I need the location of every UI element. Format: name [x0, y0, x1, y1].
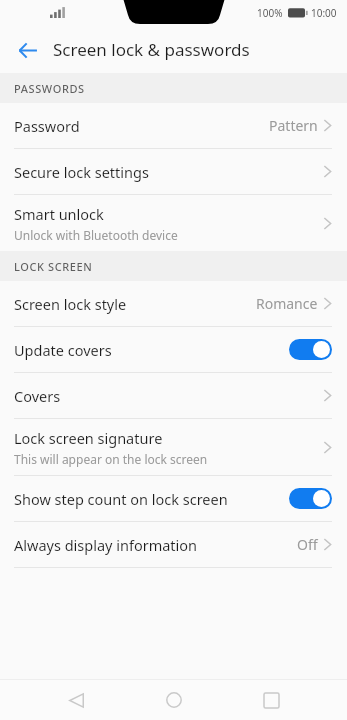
staticText: Update covers	[14, 340, 289, 360]
staticText: This will appear on the lock screen	[14, 451, 208, 467]
button[interactable]: Always display information	[0, 522, 347, 567]
button[interactable]: Covers	[0, 373, 347, 418]
staticText: Password	[14, 116, 80, 136]
button[interactable]: Password	[0, 103, 347, 148]
button[interactable]: Show step count on lock screen	[0, 476, 347, 521]
staticText: Screen lock & passwords	[53, 38, 250, 61]
staticText: Unlock with Bluetooth device	[14, 227, 178, 243]
button[interactable]: Screen lock style	[0, 281, 347, 326]
button[interactable]: Home	[152, 680, 196, 720]
staticText: Screen lock style	[14, 294, 127, 314]
button[interactable]: Toggle Update covers	[289, 339, 332, 360]
staticText: Lock screen signature	[14, 428, 163, 448]
staticText: 10:00	[311, 6, 337, 20]
button[interactable]: Back	[54, 680, 98, 720]
staticText: Covers	[14, 386, 61, 406]
staticText: Show step count on lock screen	[14, 489, 289, 509]
button[interactable]: Back	[8, 31, 46, 69]
staticText: Pattern	[269, 116, 318, 135]
button[interactable]: Smart unlock	[0, 195, 347, 251]
button[interactable]: Toggle Show step count on lock screen	[289, 488, 332, 509]
staticText: Off	[297, 535, 318, 554]
button[interactable]: Lock screen signature	[0, 419, 347, 475]
staticText: Always display information	[14, 535, 198, 555]
staticText: Romance	[256, 294, 318, 313]
staticText: Smart unlock	[14, 204, 104, 224]
staticText: LOCK SCREEN	[14, 259, 93, 274]
staticText: Secure lock settings	[14, 162, 149, 182]
staticText: 100%	[257, 6, 283, 20]
staticText: PASSWORDS	[14, 81, 85, 96]
button[interactable]: Recent apps	[249, 680, 293, 720]
button[interactable]: Update covers	[0, 327, 347, 372]
button[interactable]: Secure lock settings	[0, 149, 347, 194]
